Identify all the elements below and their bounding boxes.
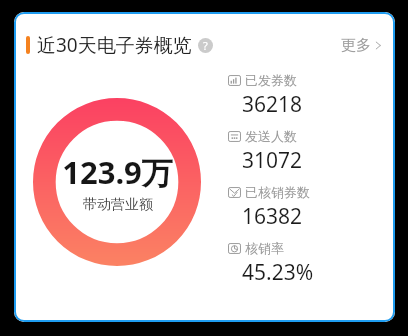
staticText: ? [203, 38, 208, 53]
staticText: 31072 [242, 146, 303, 175]
staticText: 36218 [242, 90, 303, 119]
button[interactable]: 帮助 [198, 38, 213, 53]
staticText: 16382 [242, 202, 303, 231]
staticText: 近30天电子券概览 [37, 32, 192, 58]
staticText: 发送人数 [245, 128, 297, 144]
staticText: 已发券数 [245, 72, 297, 88]
staticText: 已核销券数 [245, 184, 310, 200]
staticText: 123.9万 [62, 151, 173, 193]
button[interactable]: 更多 [341, 36, 383, 55]
staticText: 45.23% [242, 258, 314, 287]
staticText: 带动营业额 [83, 196, 153, 214]
staticText: 核销率 [245, 240, 284, 256]
staticText: 更多 [341, 36, 371, 55]
